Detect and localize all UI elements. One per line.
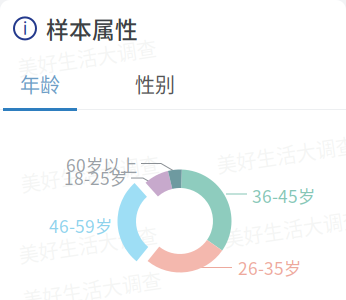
staticText: 美好生活大调查 <box>22 275 162 300</box>
button[interactable]: 年龄 <box>3 69 77 99</box>
button[interactable]: 性别 <box>118 69 192 99</box>
staticText: 18-25岁 <box>64 165 127 190</box>
staticText: 美好生活大调查 <box>223 214 346 243</box>
staticText: 性别 <box>135 69 175 98</box>
staticText: 年龄 <box>20 69 60 98</box>
staticText: i <box>23 18 27 39</box>
staticText: 美好生活大调查 <box>20 159 160 188</box>
staticText: 46-59岁 <box>49 213 112 238</box>
staticText: 60岁以上 <box>66 152 137 177</box>
staticText: 样本属性 <box>46 12 138 45</box>
staticText: 美好生活大调查 <box>17 43 157 72</box>
staticText: 36-45岁 <box>252 183 315 208</box>
staticText: 26-35岁 <box>238 255 301 280</box>
staticText: 美好生活大调查 <box>18 230 158 259</box>
staticText: 美好生活大调查 <box>216 140 346 169</box>
